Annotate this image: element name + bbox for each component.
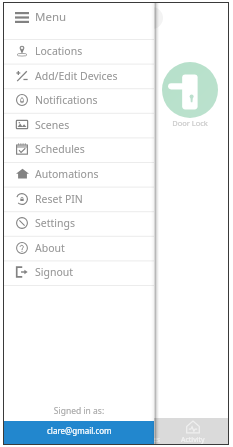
staticText: clare@gmail.com xyxy=(47,425,112,436)
button[interactable]: Devices xyxy=(121,418,173,444)
button[interactable]: Menu xyxy=(4,3,154,31)
staticText: About xyxy=(35,241,65,255)
staticText: Door Lock xyxy=(162,118,218,128)
button[interactable]: Locations xyxy=(4,39,154,62)
button[interactable]: Reset PIN xyxy=(4,187,154,210)
button[interactable]: Scenes xyxy=(4,113,154,136)
staticText: Automations xyxy=(35,167,99,181)
staticText: Settings xyxy=(35,216,75,230)
staticText: Reset PIN xyxy=(35,192,83,206)
button[interactable]: Schedules xyxy=(4,137,154,160)
button[interactable]: Door Lock xyxy=(162,62,218,118)
staticText: Locations xyxy=(35,44,83,58)
button[interactable]: Settings xyxy=(4,211,154,234)
button[interactable]: Home xyxy=(18,418,70,444)
staticText: Schedules xyxy=(35,142,85,156)
staticText: Signout xyxy=(35,265,74,279)
button[interactable]: Signout xyxy=(4,260,154,283)
staticText: Menu xyxy=(35,9,67,25)
staticText: Activity xyxy=(181,435,205,444)
staticText: Signed in as: xyxy=(4,405,154,417)
staticText: Devices xyxy=(135,435,160,444)
button[interactable]: Notifications xyxy=(4,88,154,111)
button[interactable]: clare@gmail.com xyxy=(4,421,154,444)
button[interactable]: Activity xyxy=(167,418,219,444)
button[interactable]: Automations xyxy=(4,162,154,185)
staticText: Scenes xyxy=(35,118,70,132)
button[interactable]: About xyxy=(4,236,154,259)
button[interactable]: Add/Edit Devices xyxy=(4,64,154,87)
staticText: Add/Edit Devices xyxy=(35,69,118,83)
staticText: Notifications xyxy=(35,93,98,107)
